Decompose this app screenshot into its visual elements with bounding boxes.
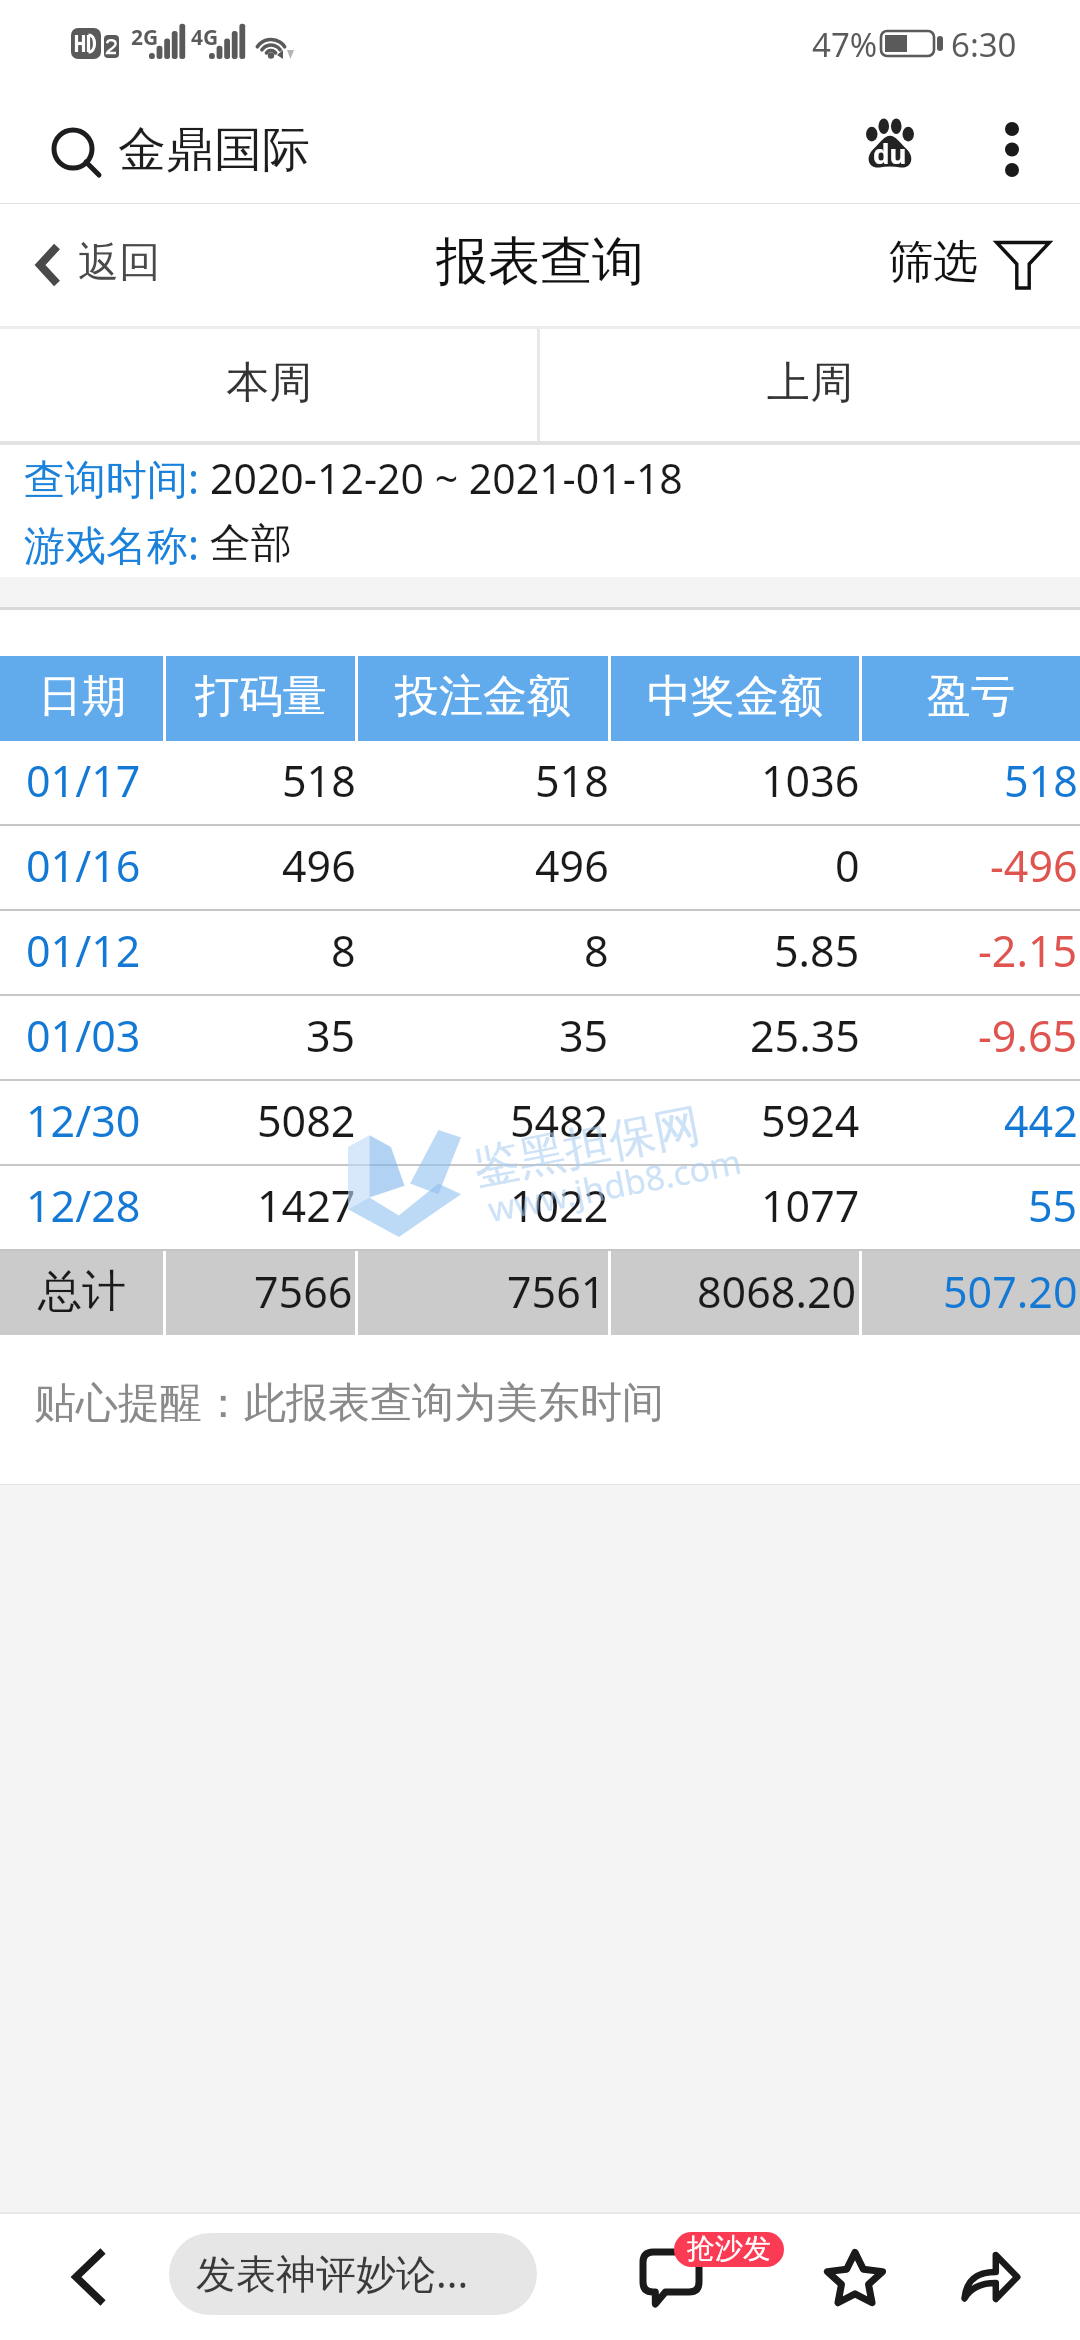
staticText: 1036: [761, 751, 860, 810]
staticText: 8: [331, 921, 356, 980]
staticText: 1077: [761, 1176, 860, 1235]
staticText: 507.20: [943, 1262, 1078, 1321]
staticText: 5924: [761, 1091, 860, 1150]
staticText: -9.65: [978, 1006, 1078, 1065]
staticText: 01/12: [26, 921, 141, 980]
staticText: 日期: [38, 669, 126, 724]
staticText: 全部: [210, 518, 292, 570]
button[interactable]: 01/12: [0, 911, 1080, 994]
staticText: 7561: [507, 1262, 606, 1321]
staticText: 7566: [254, 1262, 353, 1321]
button[interactable]: 01/17: [0, 741, 1080, 824]
staticText: 01/17: [26, 751, 141, 810]
staticText: -496: [990, 836, 1078, 895]
button[interactable]: 本周: [0, 329, 537, 441]
button[interactable]: 01/16: [0, 826, 1080, 909]
staticText: 8068.20: [697, 1262, 857, 1321]
staticText: 1022: [510, 1176, 609, 1235]
staticText: 6:30: [951, 22, 1017, 67]
button[interactable]: 01/03: [0, 996, 1080, 1079]
staticText: 发表神评妙论...: [196, 2245, 469, 2300]
button[interactable]: 返回: [32, 204, 1080, 326]
button[interactable]: 金鼎国际: [48, 102, 832, 204]
button[interactable]: 12/30: [0, 1081, 1080, 1164]
staticText: 本周: [226, 356, 312, 410]
button[interactable]: Favorite: [800, 2235, 910, 2319]
staticText: 4G: [191, 23, 219, 52]
staticText: 5082: [257, 1091, 356, 1150]
button[interactable]: Baidu: [832, 107, 924, 199]
staticText: 8: [584, 921, 609, 980]
staticText: 返回: [78, 237, 160, 289]
staticText: 盈亏: [927, 669, 1015, 724]
staticText: 中奖金额: [647, 669, 823, 724]
staticText: 2020-12-20 ~ 2021-01-18: [210, 450, 683, 506]
button[interactable]: More options: [962, 115, 1038, 191]
staticText: 35: [559, 1006, 609, 1065]
staticText: www.jhdb8.com: [484, 1138, 745, 1232]
staticText: 47%: [812, 22, 878, 67]
button[interactable]: 筛选: [888, 204, 1050, 326]
button[interactable]: Back: [40, 2235, 140, 2319]
staticText: 抢沙发: [687, 2232, 771, 2266]
staticText: 442: [1004, 1091, 1078, 1150]
staticText: 12/28: [26, 1176, 141, 1235]
button[interactable]: Comments: [618, 2232, 728, 2322]
staticText: 投注金额: [395, 669, 571, 724]
staticText: 496: [535, 836, 609, 895]
staticText: 5.85: [774, 921, 860, 980]
staticText: 518: [282, 751, 356, 810]
staticText: 01/16: [26, 836, 141, 895]
staticText: 报表查询: [436, 229, 644, 295]
staticText: 筛选: [888, 234, 978, 291]
staticText: 打码量: [195, 669, 327, 724]
staticText: 5482: [510, 1091, 609, 1150]
staticText: 01/03: [26, 1006, 141, 1065]
staticText: 游戏名称:: [24, 516, 210, 572]
staticText: 518: [535, 751, 609, 810]
staticText: 1427: [257, 1176, 356, 1235]
staticText: 总计: [38, 1264, 126, 1319]
button[interactable]: 12/28: [0, 1166, 1080, 1249]
staticText: 55: [1028, 1176, 1078, 1235]
button[interactable]: 上周: [540, 329, 1080, 441]
staticText: 518: [1004, 751, 1078, 810]
staticText: 0: [835, 836, 860, 895]
staticText: -2.15: [978, 921, 1078, 980]
staticText: 496: [282, 836, 356, 895]
button[interactable]: 发表神评妙论...: [169, 2233, 537, 2315]
staticText: 鉴黑担保网: [469, 1097, 705, 1197]
staticText: du: [873, 136, 907, 171]
staticText: 查询时间:: [24, 450, 210, 506]
staticText: 2G: [131, 23, 159, 52]
staticText: 金鼎国际: [118, 120, 310, 180]
button[interactable]: Share: [935, 2235, 1045, 2319]
staticText: 35: [306, 1006, 356, 1065]
staticText: 12/30: [26, 1091, 141, 1150]
staticText: 25.35: [750, 1006, 860, 1065]
staticText: 上周: [767, 356, 853, 410]
staticText: 贴心提醒：此报表查询为美东时间: [34, 1377, 664, 1430]
